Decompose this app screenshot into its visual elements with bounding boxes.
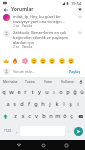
button[interactable]: Tuana xyxy=(20,77,39,86)
button[interactable]: t xyxy=(29,86,36,98)
button[interactable]: x xyxy=(19,110,26,122)
button[interactable]: w xyxy=(8,86,15,98)
button[interactable]: Emoji xyxy=(21,57,29,65)
staticText: ç xyxy=(70,112,73,120)
button[interactable]: l xyxy=(60,98,67,110)
button[interactable]: Emoji xyxy=(48,57,56,65)
button[interactable]: ç xyxy=(68,110,75,122)
button[interactable]: Recents xyxy=(62,141,70,149)
button[interactable]: j xyxy=(46,98,53,110)
staticText: s xyxy=(13,100,16,108)
staticText: Kullanıcı xyxy=(61,79,75,84)
button[interactable]: Filter xyxy=(76,6,83,13)
button[interactable]: b xyxy=(40,110,47,122)
button[interactable]: milas_fp Hey, bu güzel bir tavsiyeye yan… xyxy=(0,13,85,29)
button[interactable]: Emoji xyxy=(67,57,75,65)
staticText: o xyxy=(59,88,63,96)
staticText: d xyxy=(20,100,24,108)
staticText: Yanıtla xyxy=(22,24,33,28)
staticText: u xyxy=(45,88,49,96)
staticText: Yorum ekle... xyxy=(13,69,35,74)
button[interactable]: z xyxy=(11,110,19,122)
button[interactable]: Send xyxy=(72,122,85,140)
button[interactable]: , xyxy=(14,122,20,140)
staticText: ü xyxy=(80,88,84,96)
button[interactable]: Emoji xyxy=(2,57,10,65)
button[interactable]: o xyxy=(57,86,64,98)
button[interactable]: Shift xyxy=(0,110,11,122)
button[interactable]: s xyxy=(11,98,18,110)
button[interactable]: Kullanıcı xyxy=(58,77,77,86)
button[interactable]: Emoji xyxy=(58,57,66,65)
staticText: ö xyxy=(63,112,67,120)
staticText: m xyxy=(55,112,61,120)
staticText: v xyxy=(35,112,38,120)
staticText: b xyxy=(42,112,46,120)
staticText: 19:54 xyxy=(71,1,82,6)
button[interactable]: i xyxy=(74,98,81,110)
button[interactable]: k xyxy=(53,98,60,110)
button[interactable]: u xyxy=(43,86,50,98)
button[interactable]: Back xyxy=(15,141,23,149)
button[interactable]: Like xyxy=(77,30,83,36)
staticText: Yanıtla xyxy=(22,45,33,49)
button[interactable]: d xyxy=(18,98,25,110)
button[interactable]: r xyxy=(22,86,29,98)
button[interactable]: g xyxy=(32,98,39,110)
staticText: h xyxy=(41,100,45,108)
staticText: w xyxy=(9,88,14,96)
button[interactable]: Paylaş xyxy=(68,68,82,75)
button[interactable]: ı xyxy=(50,86,57,98)
button[interactable]: q xyxy=(0,86,8,98)
button[interactable]: a xyxy=(4,98,11,110)
staticText: f xyxy=(28,100,30,108)
staticText: 2 sa xyxy=(13,45,19,49)
staticText: i xyxy=(77,100,79,108)
staticText: Yarın xyxy=(44,79,53,84)
staticText: n xyxy=(49,112,53,120)
button[interactable]: 2ahkudir Benzerlerini en çok beğendim et… xyxy=(0,29,85,50)
button[interactable]: n xyxy=(47,110,54,122)
button[interactable]: p xyxy=(64,86,71,98)
button[interactable]: Backspace xyxy=(75,110,85,122)
button[interactable]: Yorum ekle... xyxy=(13,69,68,74)
staticText: Merhaba xyxy=(3,79,18,84)
staticText: r xyxy=(24,88,27,96)
staticText: . xyxy=(68,128,70,134)
staticText: a xyxy=(6,100,10,108)
staticText: 2ahkudir Benzerlerini en çok beğendim et… xyxy=(13,30,76,45)
button[interactable]: v xyxy=(33,110,40,122)
staticText: l xyxy=(63,100,65,108)
staticText: ğ xyxy=(73,88,77,96)
button[interactable]: ş xyxy=(67,98,74,110)
staticText: x xyxy=(21,112,25,120)
button[interactable]: Voice input xyxy=(77,77,85,86)
button[interactable]: e xyxy=(15,86,22,98)
button[interactable]: Emoji xyxy=(39,57,47,65)
button[interactable]: Home xyxy=(39,141,47,149)
button[interactable]: y xyxy=(36,86,43,98)
staticText: j xyxy=(49,100,51,108)
button[interactable]: ?123 xyxy=(0,122,14,140)
button[interactable]: Yarın xyxy=(39,77,58,86)
button[interactable]: Like xyxy=(77,14,83,20)
button[interactable]: ö xyxy=(61,110,68,122)
button[interactable]: h xyxy=(39,98,46,110)
staticText: e xyxy=(17,88,21,96)
button[interactable]: Emoji xyxy=(30,57,38,65)
button[interactable]: Back xyxy=(2,6,9,13)
button[interactable]: ğ xyxy=(71,86,78,98)
staticText: p xyxy=(66,88,70,96)
staticText: g xyxy=(34,100,38,108)
button[interactable]: Emoji xyxy=(11,57,19,65)
button[interactable]: c xyxy=(26,110,33,122)
button[interactable]: Merhaba xyxy=(0,77,20,86)
button[interactable]: f xyxy=(25,98,32,110)
staticText: c xyxy=(28,112,31,120)
button[interactable]: ü xyxy=(78,86,85,98)
staticText: k xyxy=(55,100,59,108)
button[interactable]: m xyxy=(54,110,61,122)
staticText: y xyxy=(38,88,41,96)
